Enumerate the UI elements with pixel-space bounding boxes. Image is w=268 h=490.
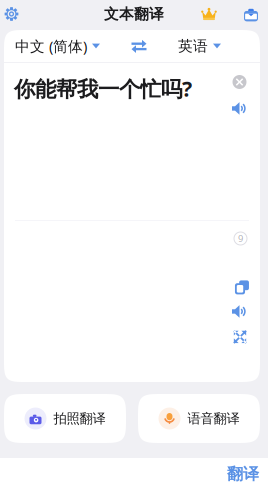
staticText: 文本翻译 [104,5,164,23]
button[interactable]: Premium [196,1,222,27]
button[interactable]: 拍照翻译 [4,394,126,443]
button[interactable]: 语音翻译 [138,394,260,443]
button[interactable]: Speak translation [232,305,247,318]
button[interactable]: Full screen [233,330,247,344]
button[interactable]: 翻译 [218,458,268,490]
button[interactable]: Clear text [232,75,246,89]
staticText: 你能帮我一个忙吗? [14,74,192,103]
button[interactable]: Character count [234,232,247,245]
button[interactable]: Copy translation [233,279,247,293]
staticText: 9 [238,232,243,245]
button[interactable]: Toolbox [238,1,264,27]
staticText: 拍照翻译 [53,410,105,427]
button[interactable]: 英语 [167,30,232,62]
button[interactable]: 中文 (简体) [4,30,111,62]
staticText: 英语 [178,37,208,55]
button[interactable]: Swap languages [123,30,155,62]
button[interactable]: Settings [2,1,21,27]
button[interactable]: Speak source text [232,102,247,115]
staticText: 语音翻译 [187,410,239,427]
staticText: 翻译 [227,464,259,484]
staticText: 中文 (简体) [15,36,87,56]
